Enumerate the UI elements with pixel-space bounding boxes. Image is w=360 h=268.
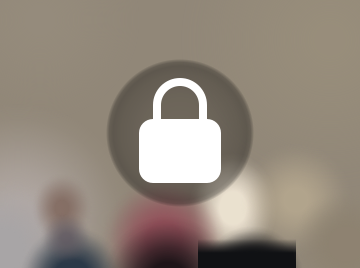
- button[interactable]: Locked: [0, 0, 360, 268]
